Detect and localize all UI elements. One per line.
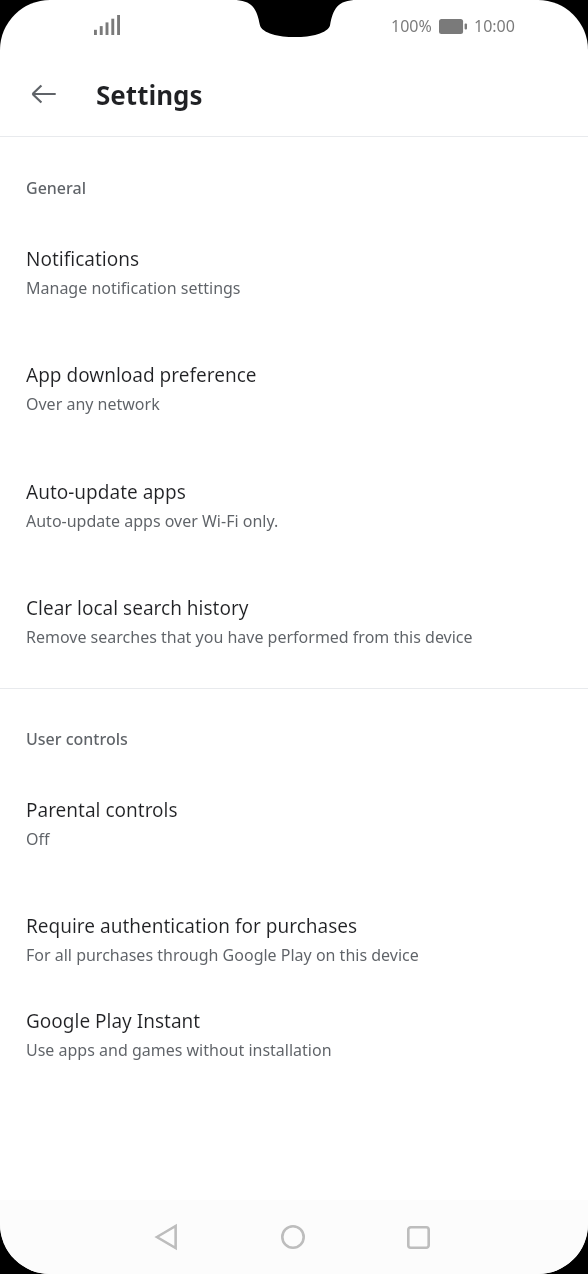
button[interactable]: Home — [261, 1205, 325, 1269]
button[interactable]: Back — [135, 1205, 199, 1269]
staticText: Clear local search history — [26, 595, 249, 621]
staticText: Settings — [96, 77, 203, 112]
button[interactable]: Recent apps — [386, 1205, 450, 1269]
staticText: Notifications — [26, 246, 140, 272]
staticText: Remove searches that you have performed … — [26, 626, 473, 648]
staticText: User controls — [26, 728, 128, 750]
staticText: Auto-update apps over Wi-Fi only. — [26, 510, 279, 532]
button[interactable]: Clear local search history — [0, 595, 588, 648]
staticText: App download preference — [26, 362, 257, 388]
staticText: Off — [26, 828, 50, 850]
staticText: 10:00 — [474, 15, 515, 37]
staticText: Google Play Instant — [26, 1008, 201, 1034]
button[interactable]: Require authentication for purchases — [0, 913, 588, 966]
staticText: Auto-update apps — [26, 479, 186, 505]
staticText: 100% — [391, 15, 432, 37]
staticText: Require authentication for purchases — [26, 913, 358, 939]
button[interactable]: App download preference — [0, 362, 588, 415]
button[interactable]: Back — [20, 70, 68, 118]
staticText: Parental controls — [26, 797, 178, 823]
button[interactable]: Parental controls — [0, 797, 588, 850]
button[interactable]: Auto-update apps — [0, 479, 588, 532]
button[interactable]: Google Play Instant — [0, 1008, 588, 1061]
staticText: For all purchases through Google Play on… — [26, 944, 419, 966]
staticText: General — [26, 177, 86, 199]
staticText: Manage notification settings — [26, 277, 241, 299]
staticText: Over any network — [26, 393, 160, 415]
staticText: Use apps and games without installation — [26, 1039, 332, 1061]
button[interactable]: Notifications — [0, 246, 588, 299]
